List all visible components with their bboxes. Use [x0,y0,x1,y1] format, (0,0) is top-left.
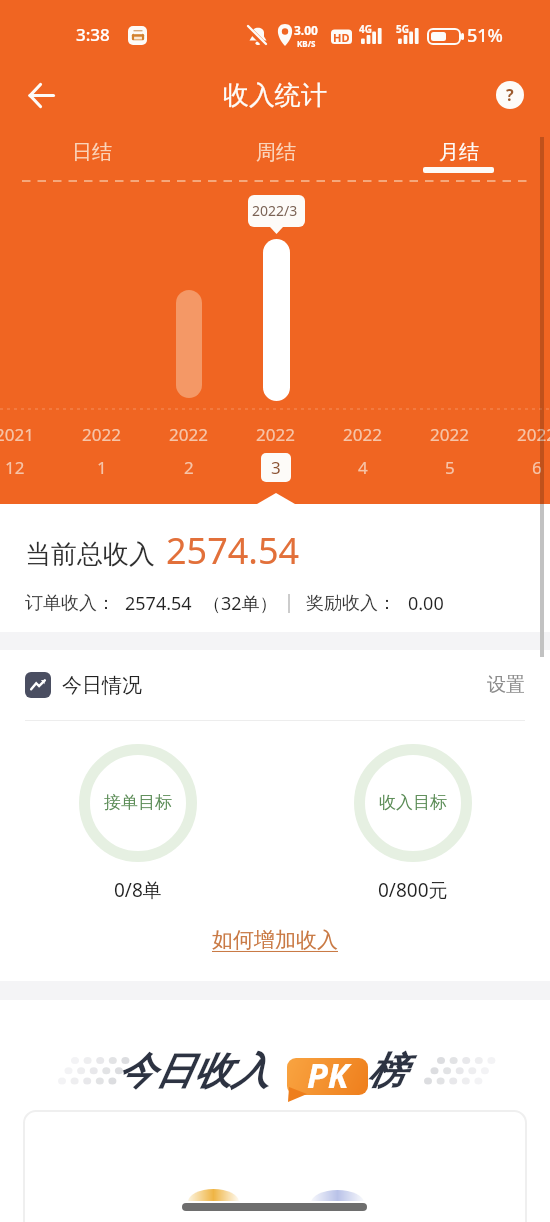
staticText: 6 [532,456,542,479]
staticText: 2 [184,456,194,479]
staticText: PK [307,1052,349,1098]
staticText: 如何增加收入 [212,927,338,953]
button[interactable]: Back [18,72,64,118]
staticText: 0/8单 [114,877,162,903]
button[interactable]: 周结 [184,130,367,180]
staticText: 2021 [0,423,34,446]
button[interactable]: Help [492,77,528,113]
staticText: 2022/3 [252,201,298,220]
button[interactable]: 2022 [145,423,232,482]
staticText: 5G [396,22,409,36]
staticText: 51% [467,23,503,48]
staticText: 2022 [256,423,295,446]
button[interactable]: 日结 [0,130,184,180]
staticText: 2022 [169,423,208,446]
staticText: 当前总收入 [25,538,155,571]
button[interactable]: 2022 [319,423,406,482]
staticText: （32单） [203,591,278,616]
button[interactable]: 接单目标 [79,744,197,903]
staticText: 12 [5,456,25,479]
staticText: 2574.54 [125,591,192,616]
button[interactable]: 2022 [406,423,493,482]
staticText: 今日收入 [117,1047,269,1095]
staticText: 4 [358,456,368,479]
button[interactable]: 2022 [232,423,319,482]
staticText: 2574.54 [166,526,300,575]
staticText: 0.00 [408,591,444,616]
staticText: 3 [271,456,281,479]
staticText: 今日情况 [62,673,142,698]
button[interactable]: 设置 [487,673,525,697]
staticText: HD [333,30,350,45]
button[interactable]: 如何增加收入 [212,927,338,953]
staticText: 周结 [256,140,296,165]
staticText: 4G [359,22,372,36]
button[interactable]: 2022 [493,423,550,482]
staticText: 订单收入： [25,592,115,615]
staticText: 5 [445,456,455,479]
staticText: 2022 [430,423,469,446]
staticText: KB/S [297,38,316,49]
staticText: 2022 [517,423,550,446]
staticText: 0/800元 [378,877,448,903]
staticText: 2022 [343,423,382,446]
staticText: 设置 [487,673,525,697]
staticText: 2022 [82,423,121,446]
button[interactable]: 2022 [58,423,145,482]
staticText: 3:38 [76,23,110,46]
staticText: 1 [97,456,107,479]
button[interactable]: 月结 [367,130,550,180]
staticText: 日结 [72,140,112,165]
staticText: 3.00 [294,22,318,38]
staticText: 月结 [439,140,479,165]
button[interactable]: 2021 [0,423,58,482]
staticText: 奖励收入： [306,592,396,615]
staticText: 收入统计 [223,79,327,112]
staticText: 榜 [367,1047,405,1095]
button[interactable]: 收入目标 [354,744,472,903]
staticText: 收入目标 [379,792,447,813]
staticText: ? [506,84,514,106]
staticText: 接单目标 [104,792,172,813]
